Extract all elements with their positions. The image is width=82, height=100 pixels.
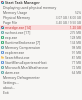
staticText: svchost.exe [17]	[5, 30, 31, 35]
staticText: Page File	[3, 20, 18, 25]
button[interactable]: Physical Memory	[0, 15, 82, 20]
button[interactable]: Memory Defragmenter	[0, 75, 82, 80]
button[interactable]: exp.exe	[0, 35, 82, 40]
staticText: 134 MB	[70, 41, 81, 45]
staticText: 3.40 GB / 9.50 GB	[55, 21, 81, 25]
staticText: 3.07 GB / 8.00 GB	[55, 16, 81, 20]
staticText: Memory Usage	[3, 10, 28, 15]
staticText: exp.exe	[5, 35, 18, 40]
staticText: Exit	[3, 90, 9, 95]
button[interactable]: svchost.exe [17]	[0, 30, 82, 35]
staticText: Settings...	[3, 80, 19, 85]
staticText: 1.20 GB	[69, 26, 81, 30]
staticText: Microsoft.Msn.Weather.exe	[5, 65, 48, 70]
button[interactable]: RuntimeBroker.exe [7]	[0, 40, 82, 45]
staticText: RuntimeBroker.exe [7]	[5, 40, 41, 45]
staticText: SearchHost.exe	[5, 55, 30, 60]
button[interactable]: Memory Usage	[0, 10, 82, 15]
staticText: Memory Compression	[5, 45, 41, 50]
staticText: 98 MB	[71, 46, 81, 50]
staticText: dwm.exe	[5, 70, 20, 75]
button[interactable]: Exit	[0, 90, 82, 95]
other: Start Task Manager icon	[1, 1, 4, 4]
staticText: 64 MB	[71, 71, 81, 75]
staticText: 72 MB	[71, 66, 81, 70]
staticText: explorer.exe	[5, 50, 25, 55]
staticText: 128 MB	[70, 36, 81, 40]
button[interactable]: Memory Compression	[0, 45, 82, 50]
staticText: Physical Memory	[3, 15, 30, 20]
staticText: StartMenuExperienceHost	[5, 60, 47, 65]
staticText: Start Task Manager	[5, 0, 40, 5]
button[interactable]: StartMenuExperienceHost	[0, 60, 82, 65]
button[interactable]: msedge.exe [14]	[0, 25, 82, 30]
button[interactable]: Page File	[0, 20, 82, 25]
staticText: 81 MB	[71, 56, 81, 60]
button[interactable]: Microsoft.Msn.Weather.exe	[0, 65, 82, 70]
button[interactable]: dwm.exe	[0, 70, 82, 75]
staticText: msedge.exe [14]	[5, 25, 32, 30]
staticText: about...	[3, 85, 16, 90]
button[interactable]: explorer.exe	[0, 50, 82, 55]
button[interactable]: about...	[0, 85, 82, 90]
button[interactable]: Start Task Manager icon	[0, 0, 82, 5]
button[interactable]: SearchHost.exe	[0, 55, 82, 60]
button[interactable]: Displaying used physical memory	[0, 5, 82, 10]
staticText: 275 MB	[70, 31, 81, 35]
staticText: 77 MB	[71, 61, 81, 65]
staticText: 52%	[74, 11, 81, 15]
button[interactable]: Settings...	[0, 80, 82, 85]
staticText: Displaying used physical memory	[3, 5, 57, 10]
staticText: Memory Defragmenter	[3, 75, 40, 80]
staticText: 91 MB	[71, 51, 81, 55]
